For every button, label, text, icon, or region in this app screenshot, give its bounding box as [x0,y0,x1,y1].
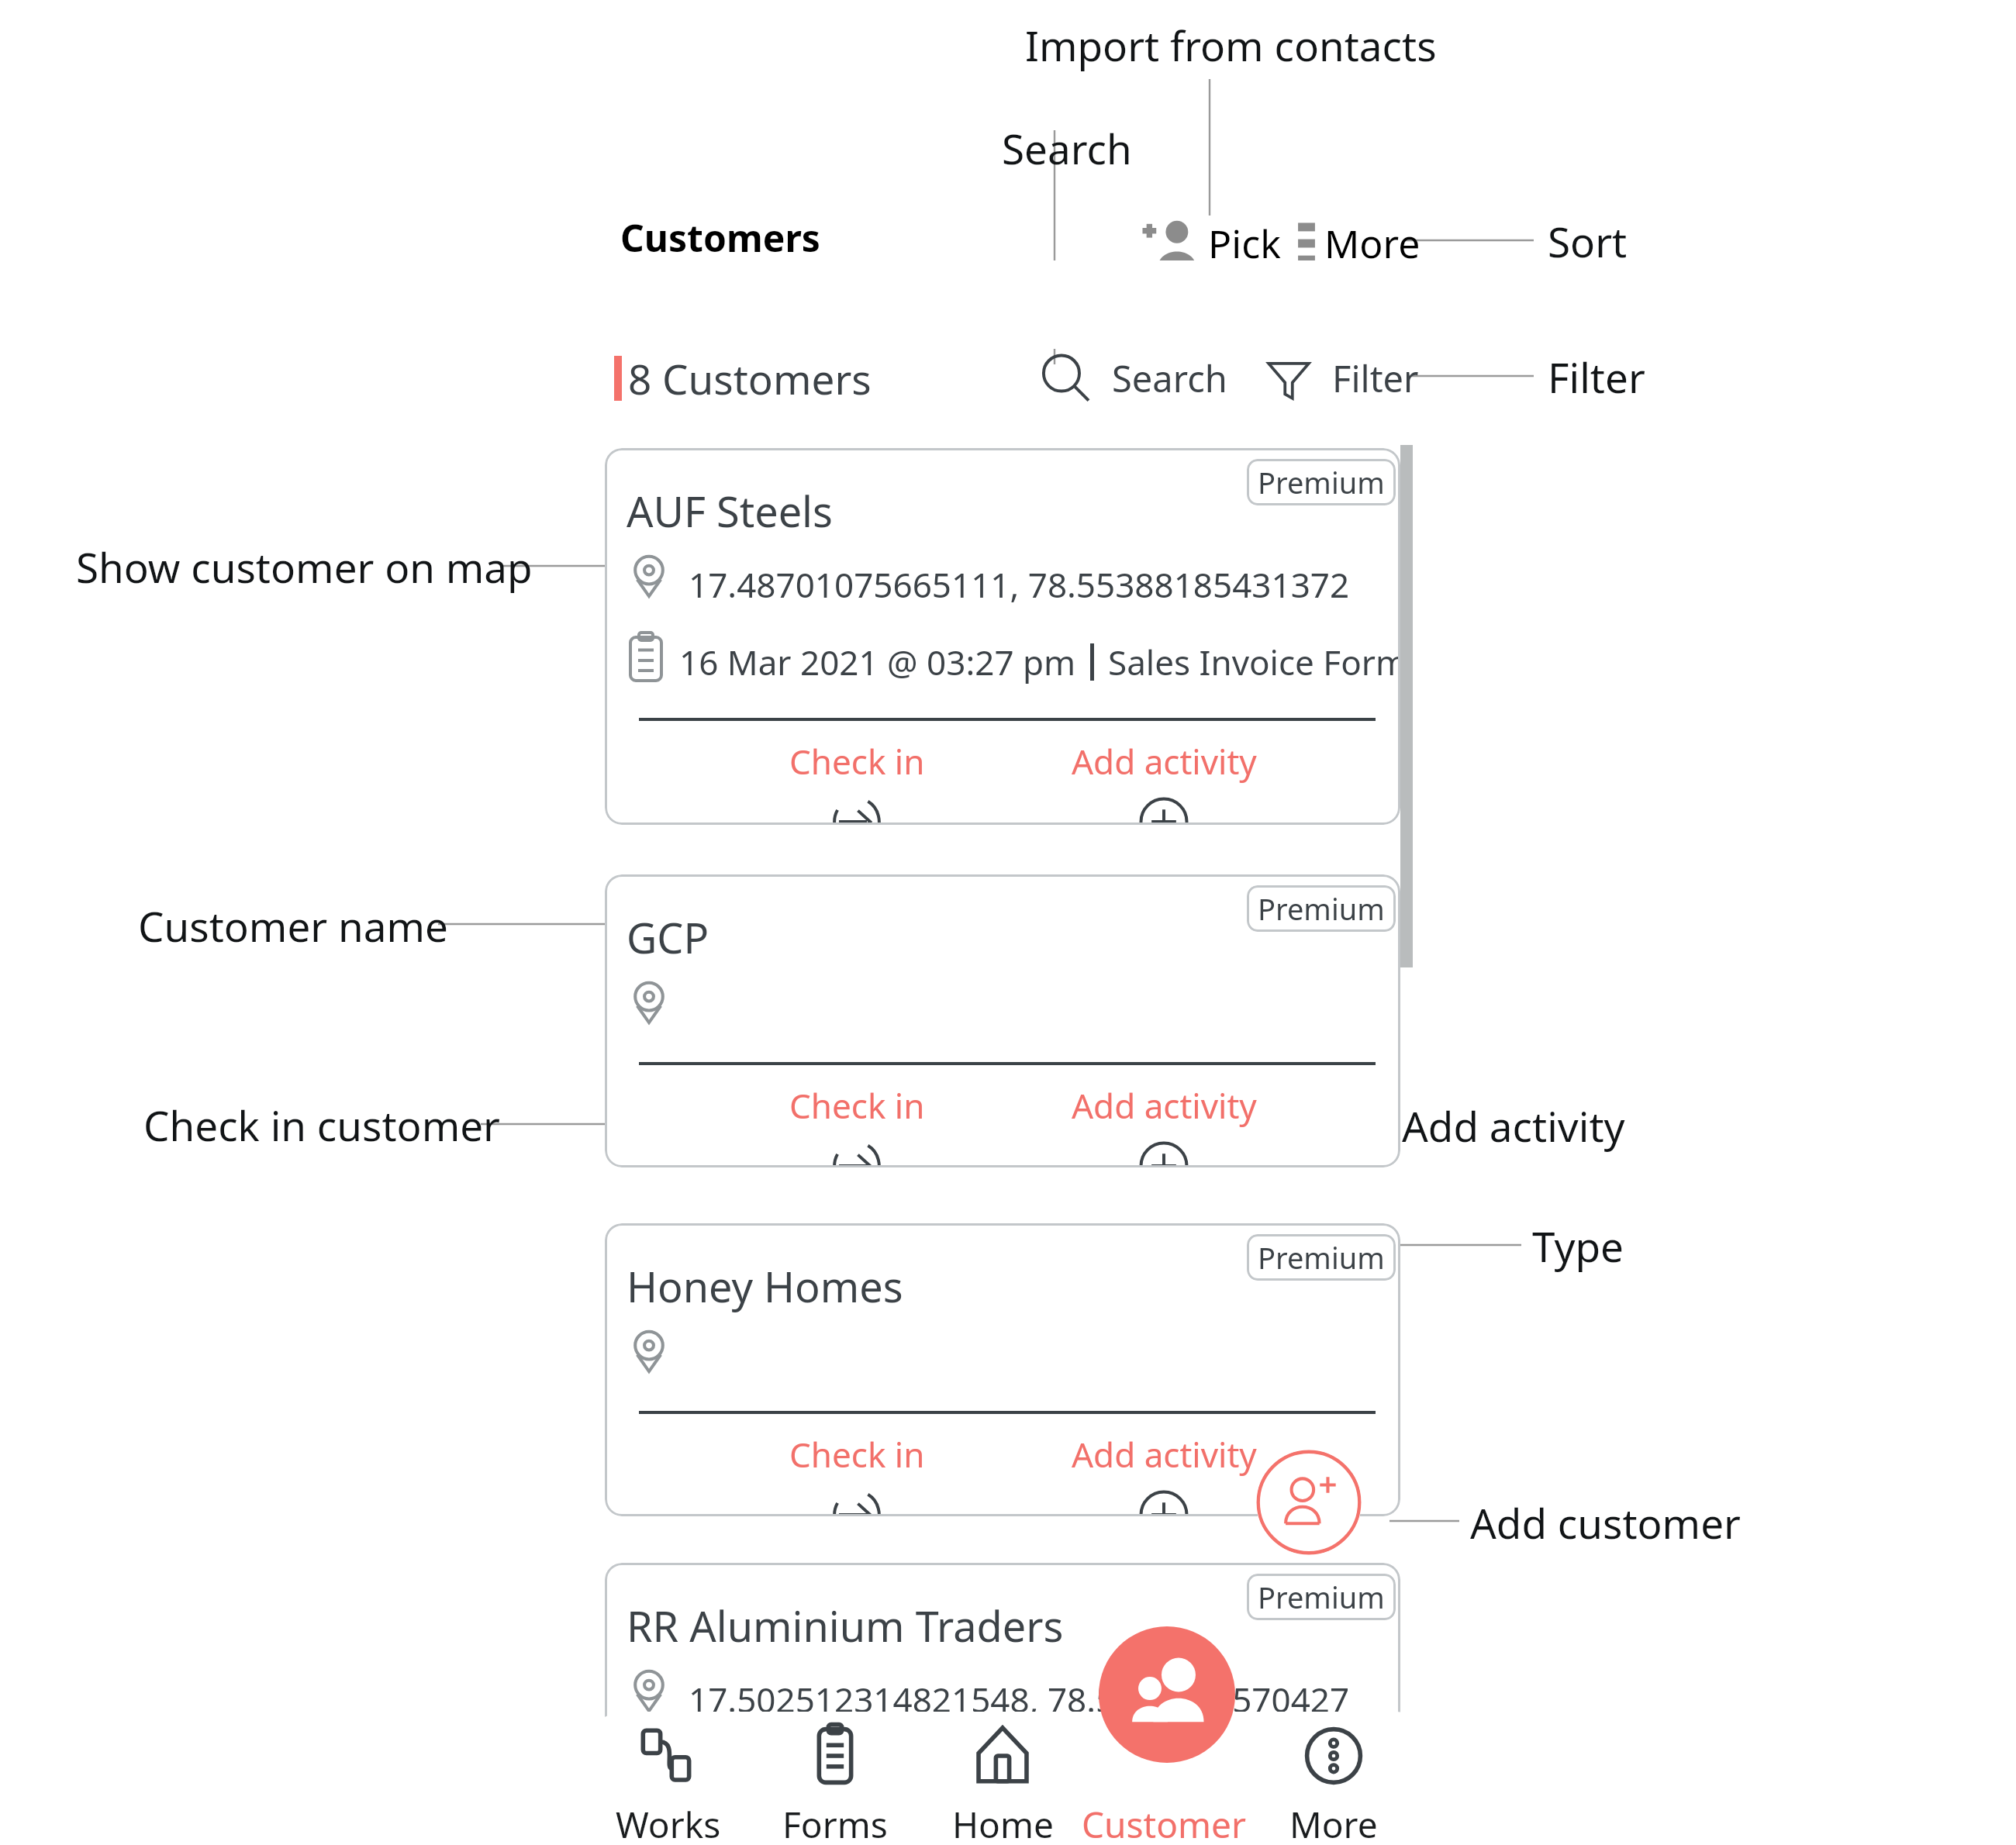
staticText: Forms [782,1800,888,1845]
staticText: Filter [1332,353,1419,403]
staticText: AUF Steels [627,482,833,540]
button[interactable]: Filter [1262,343,1419,414]
staticText: GCP [627,909,709,966]
button[interactable]: More [1296,211,1421,276]
staticText: Customers [1082,1800,1252,1845]
staticText: Import from contacts [1025,17,1437,73]
staticText: Add activity [1072,1431,1257,1478]
staticText: Home [952,1800,1054,1845]
button[interactable]: Forms [750,1723,920,1845]
button[interactable]: Works [583,1723,754,1845]
staticText: More [1324,217,1421,270]
staticText: Check in [789,1082,925,1129]
button[interactable]: 8 Customers [614,343,872,414]
staticText: Honey Homes [627,1257,903,1315]
staticText: Check in [789,738,925,785]
button[interactable]: Customers [1082,1723,1252,1845]
staticText: Search [1002,120,1132,176]
staticText: 17.502512314821548, 78.5512344570427 [689,1676,1350,1723]
button[interactable]: More [1248,1723,1419,1845]
button[interactable]: Pick [1141,211,1281,276]
staticText: More [1289,1800,1378,1845]
staticText: Customer name [138,898,448,954]
staticText: Add activity [1072,738,1257,785]
button[interactable]: Check in [760,1431,954,1516]
button[interactable]: Check in [760,1082,954,1167]
staticText: Pick [1208,217,1281,270]
staticText: Show customer on map [76,539,533,595]
staticText: Customers [620,212,820,263]
button[interactable]: Premium [605,874,1400,1167]
staticText: Premium [1258,888,1385,929]
button[interactable]: Add customer [1256,1450,1362,1555]
staticText: Sales Invoice Form [1108,639,1400,685]
staticText: Check in [789,1431,925,1478]
staticText: 8 Customers [628,350,872,406]
button[interactable]: Premium [605,1563,1400,1819]
staticText: Filter [1548,349,1645,405]
staticText: Sort [1548,213,1628,269]
button[interactable]: Add activity [1067,1082,1261,1167]
button[interactable]: Customers [1099,1626,1235,1763]
staticText: Premium [1258,1237,1385,1278]
button[interactable]: Premium [605,1223,1400,1516]
staticText: Type [1532,1218,1624,1274]
staticText: Add activity [1402,1098,1625,1154]
button[interactable]: Search [1037,343,1227,414]
staticText: Add customer [1470,1495,1741,1550]
button[interactable]: Premium [605,448,1400,825]
staticText: 16 Mar 2021 @ 03:27 pm [679,639,1076,685]
button[interactable]: Add activity [1067,1431,1261,1516]
staticText: Add activity [1072,1082,1257,1129]
staticText: Premium [1258,462,1385,502]
staticText: Search [1112,353,1227,403]
staticText: Works [616,1800,721,1845]
staticText: Check in customer [143,1097,500,1153]
staticText: 17.48701075665111, 78.55388185431372 [689,561,1350,608]
button[interactable]: Add activity [1067,738,1261,825]
button[interactable]: Check in [760,738,954,825]
staticText: RR Aluminium Traders [627,1597,1064,1654]
button[interactable]: Home [917,1723,1088,1845]
staticText: Premium [1258,1577,1385,1617]
